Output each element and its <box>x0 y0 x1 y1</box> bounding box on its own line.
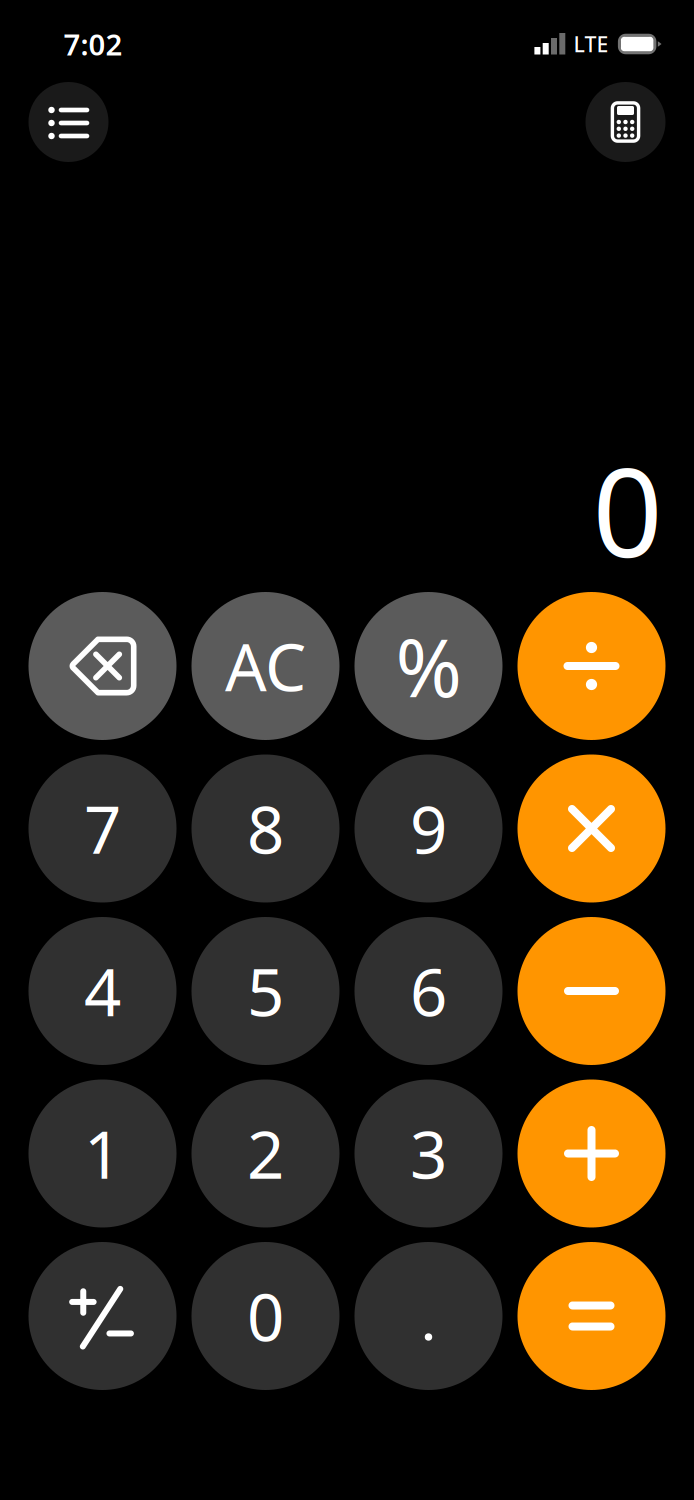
staticText: 6 <box>410 948 447 1034</box>
button[interactable]: Subtract <box>517 917 665 1065</box>
staticText: 2 <box>247 1110 284 1197</box>
button[interactable]: 1 <box>28 1079 176 1227</box>
staticText: 7 <box>84 785 121 872</box>
button[interactable]: 5 <box>191 917 339 1065</box>
button[interactable]: 7 <box>28 754 176 902</box>
button[interactable]: 8 <box>191 754 339 902</box>
button[interactable]: Divide <box>517 592 665 740</box>
button[interactable]: Equals <box>517 1242 665 1390</box>
staticText: % <box>395 613 461 719</box>
staticText: 0 <box>247 1273 284 1359</box>
button[interactable]: Plus minus <box>28 1242 176 1390</box>
button[interactable]: 0 <box>191 1242 339 1390</box>
staticText: 4 <box>84 948 121 1034</box>
button[interactable]: 6 <box>354 917 502 1065</box>
staticText: 5 <box>247 948 284 1034</box>
staticText: 7:02 <box>63 24 122 63</box>
button[interactable]: Decimal point <box>354 1242 502 1390</box>
button[interactable]: 4 <box>28 917 176 1065</box>
button[interactable]: AC <box>191 592 339 740</box>
button[interactable]: Calculator <box>585 82 665 162</box>
staticText: 9 <box>410 785 447 872</box>
button[interactable]: Add <box>517 1079 665 1227</box>
button[interactable]: Multiply <box>517 754 665 902</box>
button[interactable]: 3 <box>354 1079 502 1227</box>
staticText: LTE <box>573 30 608 58</box>
button[interactable]: 2 <box>191 1079 339 1227</box>
button[interactable]: % <box>354 592 502 740</box>
staticText: 0 <box>592 428 662 591</box>
staticText: 3 <box>410 1110 447 1197</box>
button[interactable]: 9 <box>354 754 502 902</box>
staticText: 1 <box>84 1110 121 1197</box>
button[interactable]: History <box>28 82 108 162</box>
staticText: 8 <box>247 785 284 872</box>
staticText: AC <box>225 623 306 709</box>
button[interactable]: Delete <box>28 592 176 740</box>
